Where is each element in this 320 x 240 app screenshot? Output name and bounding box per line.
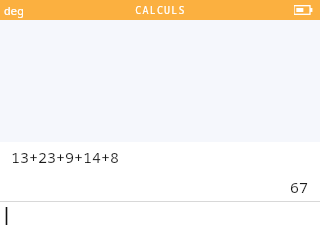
button[interactable]: Expression input (0, 202, 320, 240)
other: Battery (294, 4, 314, 16)
staticText: 13+23+9+14+8 (11, 147, 120, 167)
staticText: deg (4, 3, 24, 18)
staticText: 67 (289, 177, 308, 197)
staticText: CALCULS (135, 3, 186, 17)
button[interactable]: 13+23+9+14+8 (0, 142, 320, 201)
button[interactable]: deg (0, 3, 28, 18)
